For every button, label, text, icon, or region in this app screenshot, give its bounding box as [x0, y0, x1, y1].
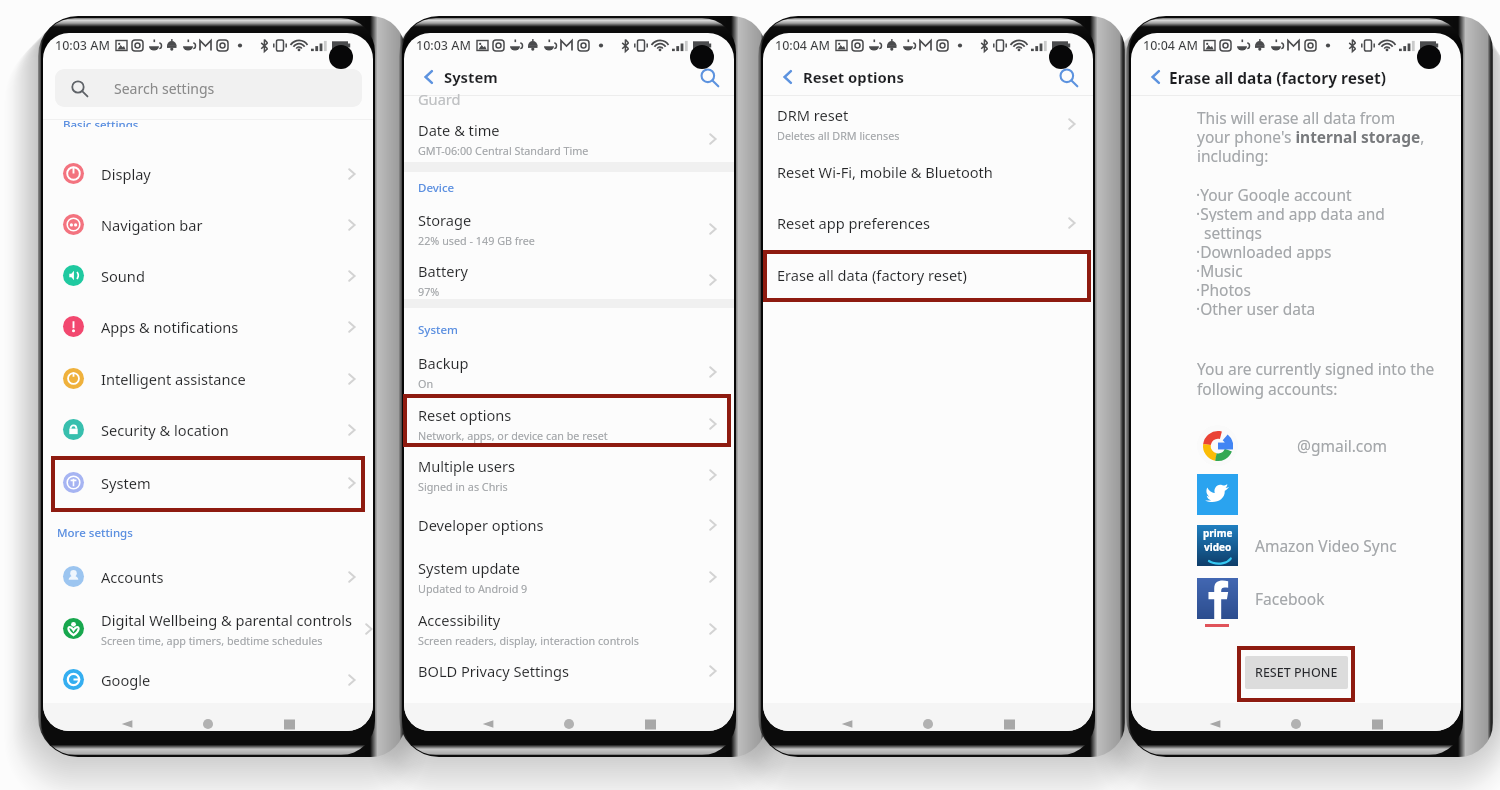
button[interactable]: Intelligent assistance [43, 353, 373, 404]
staticText: Deletes all DRM licenses [777, 128, 900, 143]
button[interactable]: Accessibility [404, 604, 734, 654]
button[interactable]: Back [1145, 66, 1167, 88]
staticText: GMT-06:00 Central Standard Time [418, 143, 589, 158]
staticText: 22% used - 149 GB free [418, 233, 535, 248]
staticText: Reset Wi-Fi, mobile & Bluetooth [777, 162, 993, 182]
staticText: Updated to Android 9 [418, 581, 528, 596]
button[interactable]: System [43, 457, 373, 508]
button[interactable]: Search [55, 69, 362, 107]
button[interactable]: Sound [43, 250, 373, 301]
button[interactable]: Facebook [1197, 578, 1325, 619]
button[interactable]: Back [418, 66, 440, 88]
button[interactable]: DRM reset [763, 99, 1093, 149]
staticText: Facebook [1255, 588, 1325, 609]
staticText: Erase all data (factory reset) [777, 265, 967, 285]
staticText: System update [418, 558, 521, 578]
staticText: BOLD Privacy Settings [418, 661, 569, 681]
staticText: Apps & notifications [101, 317, 239, 337]
button[interactable]: Security & location [43, 404, 373, 455]
staticText: video [1204, 540, 1232, 554]
staticText: Search settings [114, 79, 215, 98]
button[interactable]: prime [1197, 525, 1397, 566]
other: Back [482, 718, 494, 730]
staticText: Screen readers, display, interaction con… [418, 633, 639, 648]
staticText: Reset options [418, 405, 512, 425]
button[interactable]: Storage [404, 205, 734, 253]
staticText: ·Photos [1196, 279, 1251, 298]
button[interactable]: Google [43, 654, 373, 705]
staticText: 10:03 AM [416, 37, 471, 54]
staticText: Amazon Video Sync [1255, 535, 1397, 556]
other: Home [922, 718, 934, 730]
other: Back [1209, 718, 1221, 730]
staticText: @gmail.com [1297, 435, 1388, 456]
other: Back [420, 68, 438, 86]
button[interactable]: Apps & notifications [43, 301, 373, 352]
button[interactable]: Developer options [404, 500, 734, 550]
button[interactable]: Back [1203, 712, 1227, 731]
staticText: ·Music [1196, 260, 1243, 279]
staticText: More settings [57, 525, 133, 541]
button[interactable]: Accounts [43, 551, 373, 602]
other: Recents [645, 719, 656, 730]
staticText: Accessibility [418, 610, 501, 630]
staticText: Intelligent assistance [101, 369, 246, 389]
button[interactable]: Back [115, 712, 139, 731]
button[interactable]: Recents [277, 712, 301, 731]
button[interactable]: Back [835, 712, 859, 731]
button[interactable]: Home [557, 712, 581, 731]
button[interactable]: Multiple users [404, 450, 734, 500]
button[interactable]: BOLD Privacy Settings [404, 646, 734, 696]
button[interactable] [1197, 474, 1238, 515]
staticText: Signed in as Chris [418, 479, 508, 494]
button[interactable]: Digital Wellbeing & parental controls [43, 603, 373, 654]
staticText: RESET PHONE [1255, 664, 1338, 681]
staticText: Accounts [101, 567, 164, 587]
staticText: System [101, 473, 151, 493]
staticText: System [444, 67, 498, 87]
button[interactable]: Reset options [404, 399, 734, 449]
other: Home [202, 718, 214, 730]
other: Home [1290, 718, 1302, 730]
staticText: Storage [418, 210, 472, 230]
button[interactable]: Recents [1365, 712, 1389, 731]
button[interactable]: Home [916, 712, 940, 731]
other: Recents [1004, 719, 1015, 730]
staticText: Erase all data (factory reset) [1169, 67, 1386, 88]
button[interactable]: Erase all data (factory reset) [763, 249, 1093, 301]
button[interactable]: Display [43, 148, 373, 199]
button[interactable]: Home [196, 712, 220, 731]
button[interactable]: Reset Wi-Fi, mobile & Bluetooth [763, 147, 1093, 197]
staticText: Navigation bar [101, 215, 203, 235]
button[interactable]: Recents [638, 712, 662, 731]
button[interactable]: Back [777, 66, 799, 88]
button[interactable]: Search [1055, 64, 1081, 90]
staticText: 97% [418, 284, 440, 299]
staticText: Multiple users [418, 456, 516, 476]
button[interactable]: Home [1284, 712, 1308, 731]
button[interactable]: Navigation bar [43, 199, 373, 250]
staticText: Device [418, 180, 455, 196]
button[interactable]: Backup [404, 348, 734, 396]
staticText: 10:04 AM [775, 37, 830, 54]
staticText: ·Your Google account [1196, 184, 1352, 203]
button[interactable]: Reset app preferences [763, 198, 1093, 248]
staticText: Battery [418, 261, 468, 281]
staticText: Guard [418, 89, 461, 109]
staticText: Developer options [418, 515, 544, 535]
button[interactable]: Back [476, 712, 500, 731]
button[interactable]: Battery [404, 256, 734, 304]
button[interactable]: @gmail.com [1197, 425, 1388, 466]
staticText: Reset app preferences [777, 213, 930, 233]
button[interactable]: System update [404, 552, 734, 602]
staticText: This will erase all data from your phone… [1197, 107, 1425, 166]
staticText: On [418, 376, 434, 391]
button[interactable]: RESET PHONE [1245, 656, 1348, 689]
other: Search [70, 79, 89, 98]
staticText: Network, apps, or device can be reset [418, 428, 608, 443]
button[interactable]: Date & time [404, 115, 734, 163]
button[interactable]: Recents [997, 712, 1021, 731]
other: Back [121, 718, 133, 730]
button[interactable]: Search [696, 64, 722, 90]
staticText: Backup [418, 353, 469, 373]
